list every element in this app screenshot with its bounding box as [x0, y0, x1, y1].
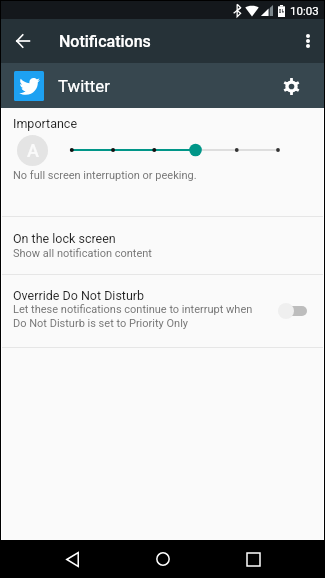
staticText: On the lock screen	[13, 231, 116, 246]
button[interactable]: Back	[9, 27, 37, 55]
staticText: Importance	[13, 116, 78, 131]
button[interactable]: Recent apps	[234, 540, 272, 578]
button[interactable]: Override Do Not Disturb	[2, 275, 323, 347]
staticText: Override Do Not Disturb	[13, 288, 145, 303]
staticText: Show all notification content	[13, 247, 152, 260]
button[interactable]: On the lock screen	[2, 217, 323, 274]
staticText: 10:03	[290, 4, 319, 17]
staticText: No full screen interruption or peeking.	[13, 169, 197, 182]
button[interactable]: Override Do Not Disturb toggle	[274, 296, 312, 326]
button[interactable]: Importance	[2, 108, 323, 216]
staticText: Notifications	[59, 32, 151, 51]
staticText: Let these notifications continue to inte…	[13, 303, 253, 330]
button[interactable]: Home	[144, 540, 182, 578]
button[interactable]: Back	[53, 540, 91, 578]
button[interactable]: More options	[293, 26, 323, 56]
staticText: A	[27, 140, 39, 161]
button[interactable]: Settings	[276, 71, 306, 101]
staticText: Twitter	[58, 76, 110, 96]
